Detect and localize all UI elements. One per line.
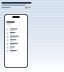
button[interactable]	[6, 39, 27, 42]
button[interactable]	[6, 31, 27, 35]
button[interactable]	[6, 46, 27, 49]
button[interactable]	[6, 35, 27, 38]
button[interactable]	[6, 28, 27, 31]
button[interactable]	[6, 49, 27, 53]
button[interactable]	[6, 42, 27, 46]
